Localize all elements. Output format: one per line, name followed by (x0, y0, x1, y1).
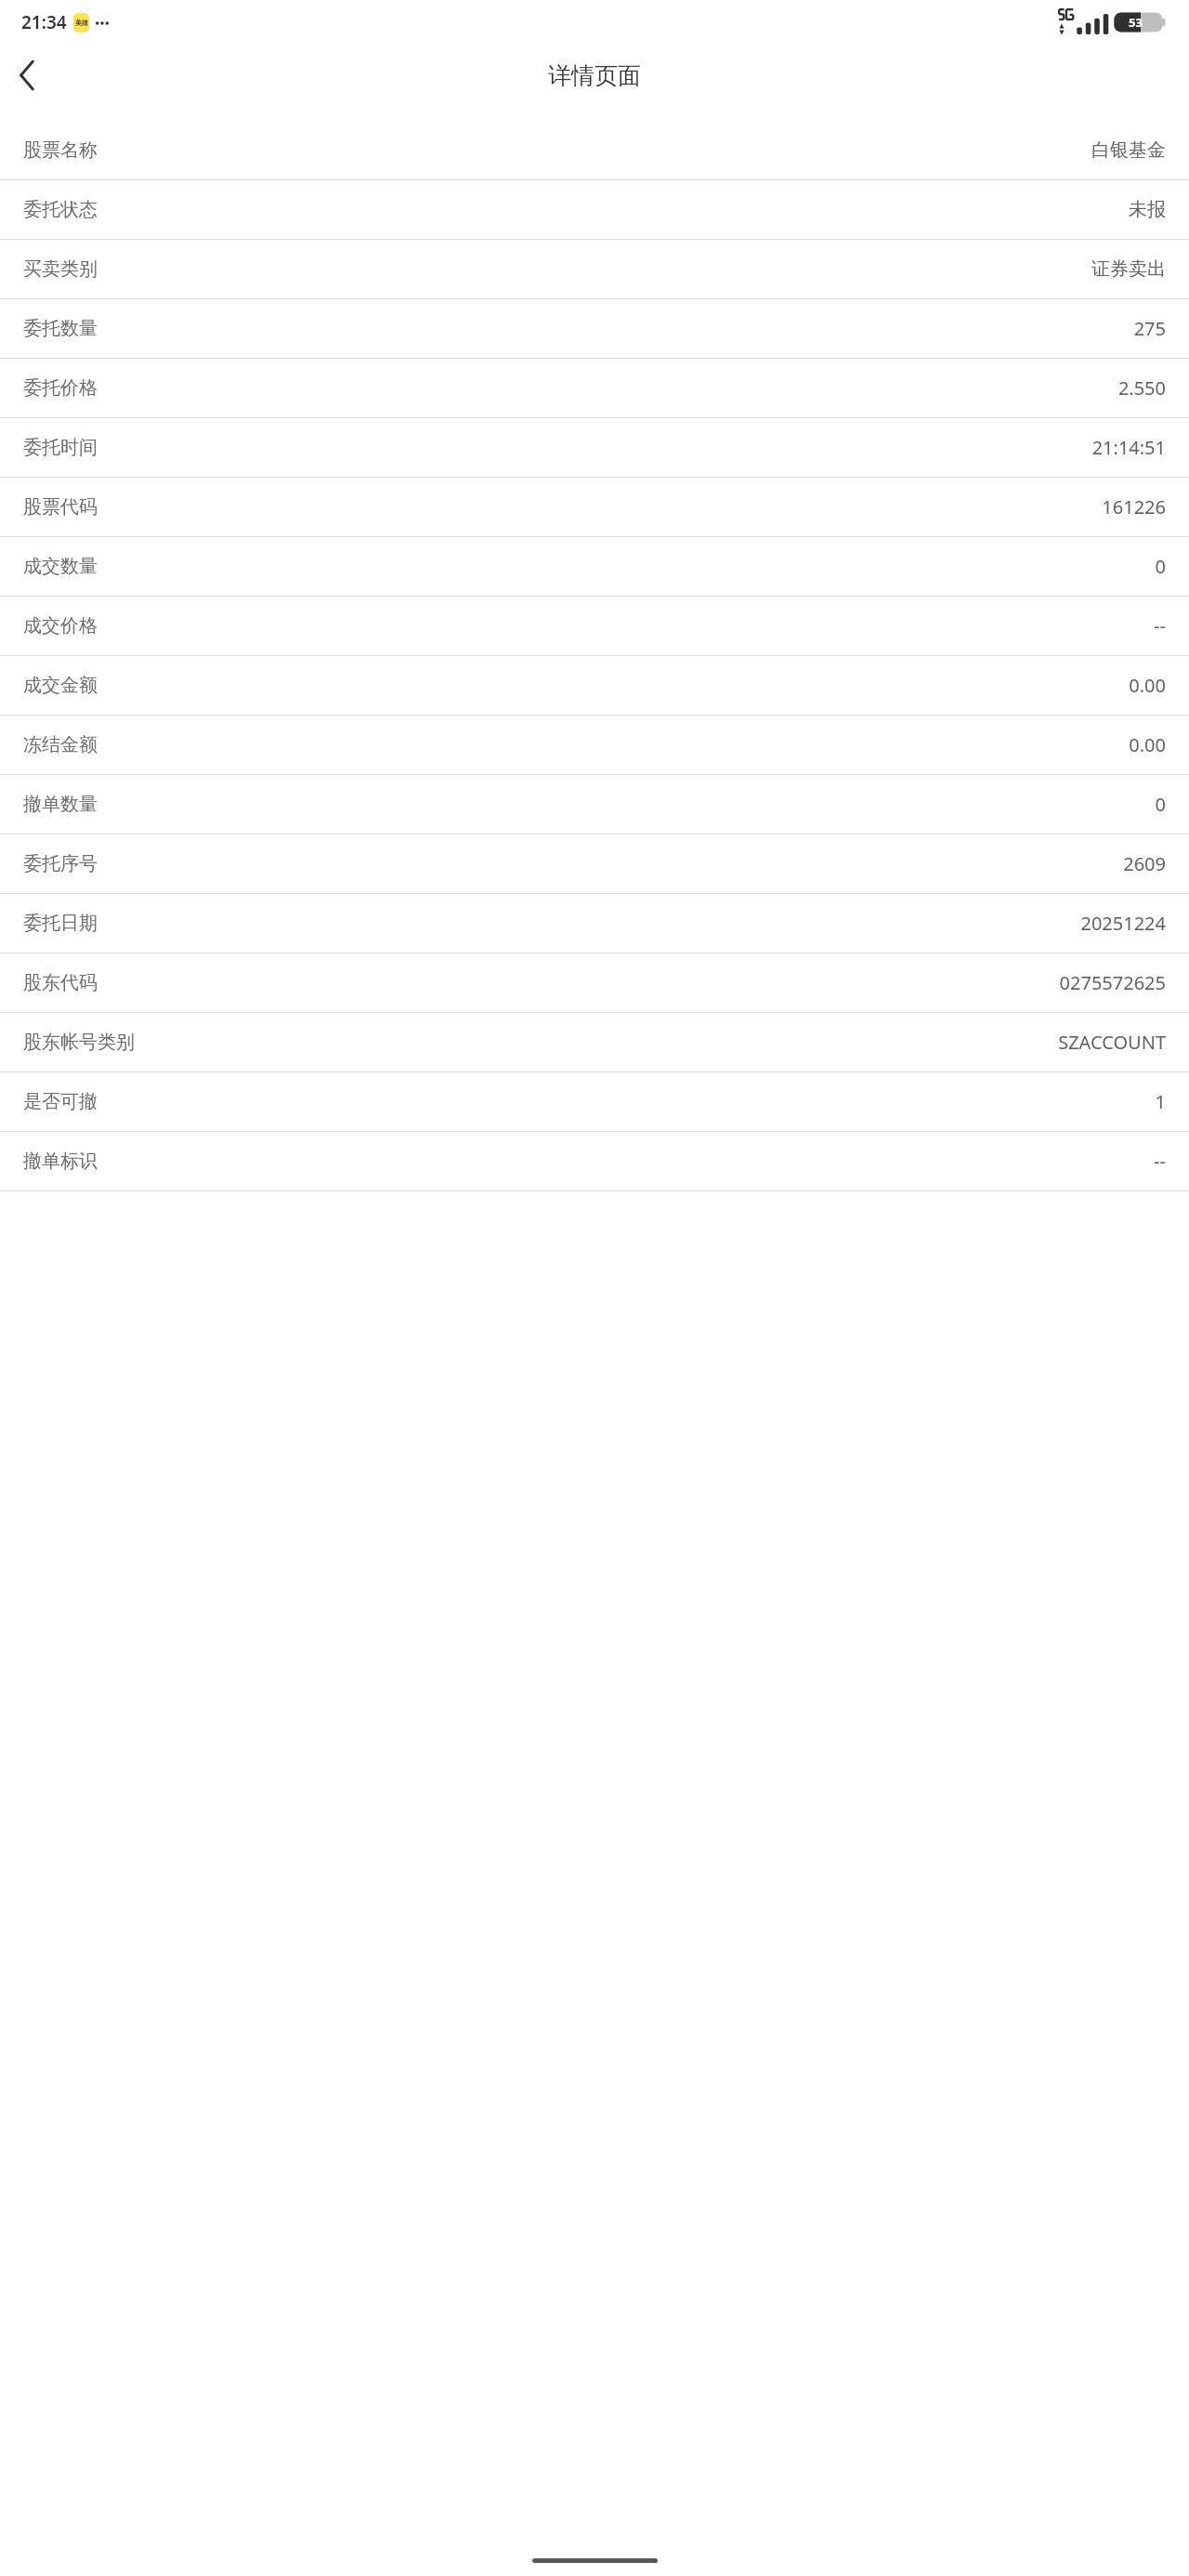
button[interactable]: 股票代码 (0, 478, 1189, 536)
button[interactable]: 撤单数量 (0, 775, 1189, 834)
staticText: 股东代码 (23, 971, 98, 994)
staticText: 美团 (75, 19, 88, 27)
button[interactable]: 股东代码 (0, 953, 1189, 1012)
staticText: 0.00 (1129, 732, 1166, 757)
button[interactable]: 是否可撤 (0, 1072, 1189, 1131)
staticText: 53 (1129, 14, 1143, 31)
staticText: -- (1154, 1149, 1166, 1174)
staticText: 委托时间 (23, 436, 98, 459)
button[interactable]: 委托日期 (0, 894, 1189, 953)
button[interactable]: 买卖类别 (0, 240, 1189, 298)
button[interactable]: 冻结金额 (0, 716, 1189, 774)
staticText: 0275572625 (1059, 970, 1166, 995)
button[interactable]: 委托价格 (0, 359, 1189, 417)
staticText: 未报 (1129, 198, 1166, 221)
button[interactable]: 股票名称 (0, 121, 1189, 179)
staticText: 是否可撤 (23, 1090, 98, 1113)
button[interactable]: 成交价格 (0, 597, 1189, 655)
staticText: 冻结金额 (23, 733, 98, 756)
staticText: 证券卖出 (1091, 257, 1166, 281)
button[interactable]: 委托时间 (0, 418, 1189, 477)
staticText: 详情页面 (548, 61, 641, 90)
button[interactable]: 成交金额 (0, 656, 1189, 715)
button[interactable]: 委托状态 (0, 180, 1189, 239)
staticText: 0.00 (1129, 673, 1166, 698)
staticText: 撤单数量 (23, 793, 98, 816)
staticText: 买卖类别 (23, 257, 98, 281)
button[interactable]: 成交数量 (0, 537, 1189, 596)
staticText: SZACCOUNT (1058, 1030, 1166, 1055)
button[interactable]: Back (0, 48, 54, 102)
staticText: 委托状态 (23, 198, 98, 221)
staticText: 21:14:51 (1091, 435, 1166, 460)
staticText: 21:34 (21, 10, 67, 34)
staticText: 2609 (1123, 851, 1166, 876)
button[interactable]: 委托数量 (0, 299, 1189, 358)
staticText: 成交价格 (23, 614, 98, 637)
staticText: 0 (1155, 792, 1166, 817)
button[interactable]: 撤单标识 (0, 1132, 1189, 1190)
staticText: 委托序号 (23, 852, 98, 875)
staticText: 委托价格 (23, 376, 98, 400)
staticText: 成交数量 (23, 555, 98, 578)
staticText: 275 (1133, 316, 1166, 341)
staticText: 成交金额 (23, 674, 98, 697)
staticText: 161226 (1102, 494, 1166, 519)
staticText: 白银基金 (1091, 138, 1166, 162)
button[interactable]: 委托序号 (0, 835, 1189, 893)
staticText: 2.550 (1117, 375, 1166, 401)
staticText: 股东帐号类别 (23, 1031, 135, 1054)
staticText: -- (1154, 613, 1166, 638)
staticText: 股票代码 (23, 495, 98, 519)
staticText: 1 (1155, 1089, 1166, 1114)
staticText: 股票名称 (23, 138, 98, 162)
staticText: 0 (1155, 554, 1166, 579)
staticText: 20251224 (1080, 911, 1166, 936)
staticText: 撤单标识 (23, 1150, 98, 1173)
staticText: 委托数量 (23, 317, 98, 340)
staticText: 委托日期 (23, 912, 98, 935)
button[interactable]: 股东帐号类别 (0, 1013, 1189, 1071)
